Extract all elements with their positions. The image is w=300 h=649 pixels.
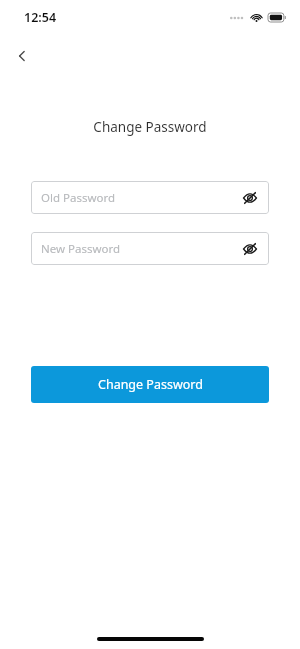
button[interactable]: Old Password: [31, 181, 269, 214]
staticText: Change Password: [0, 118, 300, 136]
button[interactable]: Show password: [240, 239, 260, 259]
button[interactable]: Show password: [240, 188, 260, 208]
button[interactable]: New Password: [31, 232, 269, 265]
button[interactable]: Back: [8, 42, 36, 70]
button[interactable]: Change Password: [31, 366, 269, 403]
staticText: Change Password: [98, 376, 203, 393]
staticText: 12:54: [24, 9, 57, 26]
staticText: Old Password: [41, 190, 240, 206]
staticText: New Password: [41, 241, 240, 257]
